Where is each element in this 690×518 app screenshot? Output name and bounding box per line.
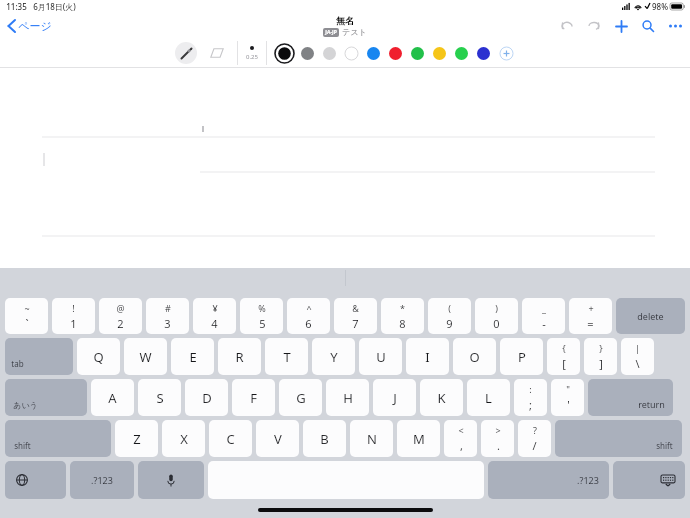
- staticText: ": [566, 383, 570, 395]
- button[interactable]: T: [265, 338, 308, 375]
- button[interactable]: tab: [5, 338, 73, 375]
- button[interactable]: K: [420, 379, 463, 416]
- staticText: X: [180, 430, 188, 448]
- button[interactable]: N: [350, 420, 393, 457]
- button[interactable]: shift: [555, 420, 682, 457]
- staticText: ;: [529, 397, 532, 412]
- button[interactable]: U: [359, 338, 402, 375]
- button[interactable]: Y: [312, 338, 355, 375]
- button[interactable]: ¥: [193, 298, 236, 334]
- button[interactable]: D: [185, 379, 228, 416]
- button[interactable]: Stroke width: [246, 46, 258, 61]
- button[interactable]: Light grey: [320, 44, 338, 62]
- button[interactable]: S: [138, 379, 181, 416]
- button[interactable]: Red: [386, 44, 404, 62]
- button[interactable]: &: [334, 298, 377, 334]
- button[interactable]: M: [397, 420, 440, 457]
- button[interactable]: F: [232, 379, 275, 416]
- button[interactable]: Redo: [586, 18, 602, 34]
- button[interactable]: ~: [5, 298, 48, 334]
- staticText: O: [469, 348, 480, 366]
- button[interactable]: }: [584, 338, 617, 375]
- button[interactable]: R: [218, 338, 261, 375]
- staticText: (: [448, 302, 451, 314]
- button[interactable]: shift: [5, 420, 111, 457]
- staticText: 7: [352, 316, 359, 331]
- button[interactable]: Add: [613, 18, 629, 34]
- button[interactable]: #: [146, 298, 189, 334]
- staticText: ^: [306, 302, 312, 314]
- button[interactable]: ): [475, 298, 518, 334]
- button[interactable]: *: [381, 298, 424, 334]
- staticText: 無名: [336, 15, 354, 26]
- button[interactable]: あいう: [5, 379, 87, 416]
- button[interactable]: !: [52, 298, 95, 334]
- staticText: .: [497, 438, 500, 453]
- button[interactable]: ページ: [5, 16, 55, 36]
- staticText: Y: [330, 348, 338, 366]
- button[interactable]: |: [621, 338, 654, 375]
- button[interactable]: +: [569, 298, 612, 334]
- button[interactable]: Pen: [175, 42, 197, 64]
- button[interactable]: Dictate: [138, 461, 204, 499]
- staticText: S: [156, 389, 164, 407]
- button[interactable]: Eraser: [207, 43, 227, 63]
- button[interactable]: Z: [115, 420, 158, 457]
- button[interactable]: {: [547, 338, 580, 375]
- button[interactable]: @: [99, 298, 142, 334]
- staticText: M: [413, 430, 425, 448]
- button[interactable]: V: [256, 420, 299, 457]
- button[interactable]: I: [406, 338, 449, 375]
- button[interactable]: .?123: [70, 461, 134, 499]
- button[interactable]: Search: [640, 18, 656, 34]
- staticText: テスト: [342, 27, 367, 37]
- button[interactable]: Undo: [559, 18, 575, 34]
- button[interactable]: ?: [518, 420, 551, 457]
- staticText: return: [638, 398, 665, 410]
- button[interactable]: C: [209, 420, 252, 457]
- button[interactable]: Black: [274, 43, 294, 63]
- button[interactable]: E: [171, 338, 214, 375]
- button[interactable]: Dark grey: [298, 44, 316, 62]
- button[interactable]: Yellow: [430, 44, 448, 62]
- staticText: tab: [11, 358, 24, 369]
- button[interactable]: J: [373, 379, 416, 416]
- button[interactable]: H: [326, 379, 369, 416]
- button[interactable]: W: [124, 338, 167, 375]
- button[interactable]: White: [342, 44, 360, 62]
- button[interactable]: :: [514, 379, 547, 416]
- button[interactable]: Green: [408, 44, 426, 62]
- button[interactable]: return: [588, 379, 673, 416]
- button[interactable]: A: [91, 379, 134, 416]
- staticText: ': [567, 397, 570, 412]
- staticText: A: [108, 389, 117, 407]
- button[interactable]: %: [240, 298, 283, 334]
- button[interactable]: X: [162, 420, 205, 457]
- button[interactable]: G: [279, 379, 322, 416]
- button[interactable]: delete: [616, 298, 685, 334]
- button[interactable]: Dark blue: [474, 44, 492, 62]
- button[interactable]: Change keyboard: [5, 461, 66, 499]
- button[interactable]: More: [667, 18, 683, 34]
- button[interactable]: L: [467, 379, 510, 416]
- button[interactable]: P: [500, 338, 543, 375]
- button[interactable]: Add colour: [497, 44, 515, 62]
- staticText: \: [635, 356, 640, 371]
- button[interactable]: (: [428, 298, 471, 334]
- button[interactable]: _: [522, 298, 565, 334]
- button[interactable]: B: [303, 420, 346, 457]
- button[interactable]: Light green: [452, 44, 470, 62]
- button[interactable]: .?123: [488, 461, 609, 499]
- staticText: shift: [14, 440, 31, 451]
- staticText: .?123: [577, 474, 599, 486]
- button[interactable]: Q: [77, 338, 120, 375]
- button[interactable]: ": [551, 379, 584, 416]
- button[interactable]: >: [481, 420, 514, 457]
- staticText: J: [393, 389, 397, 407]
- button[interactable]: <: [444, 420, 477, 457]
- button[interactable]: Blue: [364, 44, 382, 62]
- button[interactable]: O: [453, 338, 496, 375]
- button[interactable]: ^: [287, 298, 330, 334]
- button[interactable]: Hide keyboard: [613, 461, 685, 499]
